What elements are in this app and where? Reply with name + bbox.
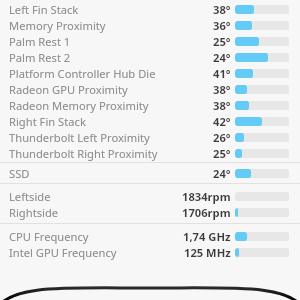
- staticText: Radeon GPU Proximity: [9, 82, 128, 97]
- button[interactable]: Left Fin Stack: [0, 1, 300, 17]
- staticText: Rightside: [9, 205, 59, 220]
- staticText: 38°: [213, 2, 231, 17]
- button[interactable]: Right Fin Stack: [0, 113, 300, 129]
- button[interactable]: Rightside: [0, 204, 300, 220]
- button[interactable]: CPU Frequency: [0, 228, 300, 244]
- staticText: Leftside: [9, 189, 51, 204]
- staticText: 25°: [213, 34, 231, 49]
- staticText: 38°: [213, 82, 231, 97]
- button[interactable]: Leftside: [0, 188, 300, 204]
- button[interactable]: SSD: [0, 165, 300, 181]
- staticText: SSD: [9, 166, 30, 181]
- staticText: 26°: [213, 130, 231, 145]
- staticText: 42°: [213, 114, 231, 129]
- staticText: CPU Frequency: [9, 229, 89, 244]
- staticText: Left Fin Stack: [9, 2, 79, 17]
- staticText: Memory Proximity: [9, 18, 106, 33]
- staticText: Platform Controller Hub Die: [9, 66, 156, 81]
- button[interactable]: Memory Proximity: [0, 17, 300, 33]
- button[interactable]: Thunderbolt Left Proximity: [0, 129, 300, 145]
- staticText: 36°: [213, 18, 231, 33]
- staticText: Radeon Memory Proximity: [9, 98, 149, 113]
- button[interactable]: Radeon Memory Proximity: [0, 97, 300, 113]
- staticText: 24°: [213, 166, 231, 181]
- staticText: Palm Rest 1: [9, 34, 71, 49]
- button[interactable]: Radeon GPU Proximity: [0, 81, 300, 97]
- staticText: Right Fin Stack: [9, 114, 86, 129]
- button[interactable]: Thunderbolt Right Proximity: [0, 145, 300, 161]
- staticText: 41°: [213, 66, 231, 81]
- staticText: Thunderbolt Right Proximity: [9, 146, 158, 161]
- staticText: Thunderbolt Left Proximity: [9, 130, 150, 145]
- staticText: 24°: [213, 50, 231, 65]
- staticText: 125 MHz: [184, 245, 231, 260]
- button[interactable]: Intel GPU Frequency: [0, 244, 300, 260]
- staticText: 1,74 GHz: [183, 229, 231, 244]
- staticText: 1834rpm: [182, 189, 231, 204]
- staticText: 38°: [213, 98, 231, 113]
- staticText: 1706rpm: [182, 205, 231, 220]
- staticText: 25°: [213, 146, 231, 161]
- button[interactable]: Palm Rest 1: [0, 33, 300, 49]
- staticText: Palm Rest 2: [9, 50, 71, 65]
- staticText: Intel GPU Frequency: [9, 245, 117, 260]
- button[interactable]: Palm Rest 2: [0, 49, 300, 65]
- button[interactable]: Platform Controller Hub Die: [0, 65, 300, 81]
